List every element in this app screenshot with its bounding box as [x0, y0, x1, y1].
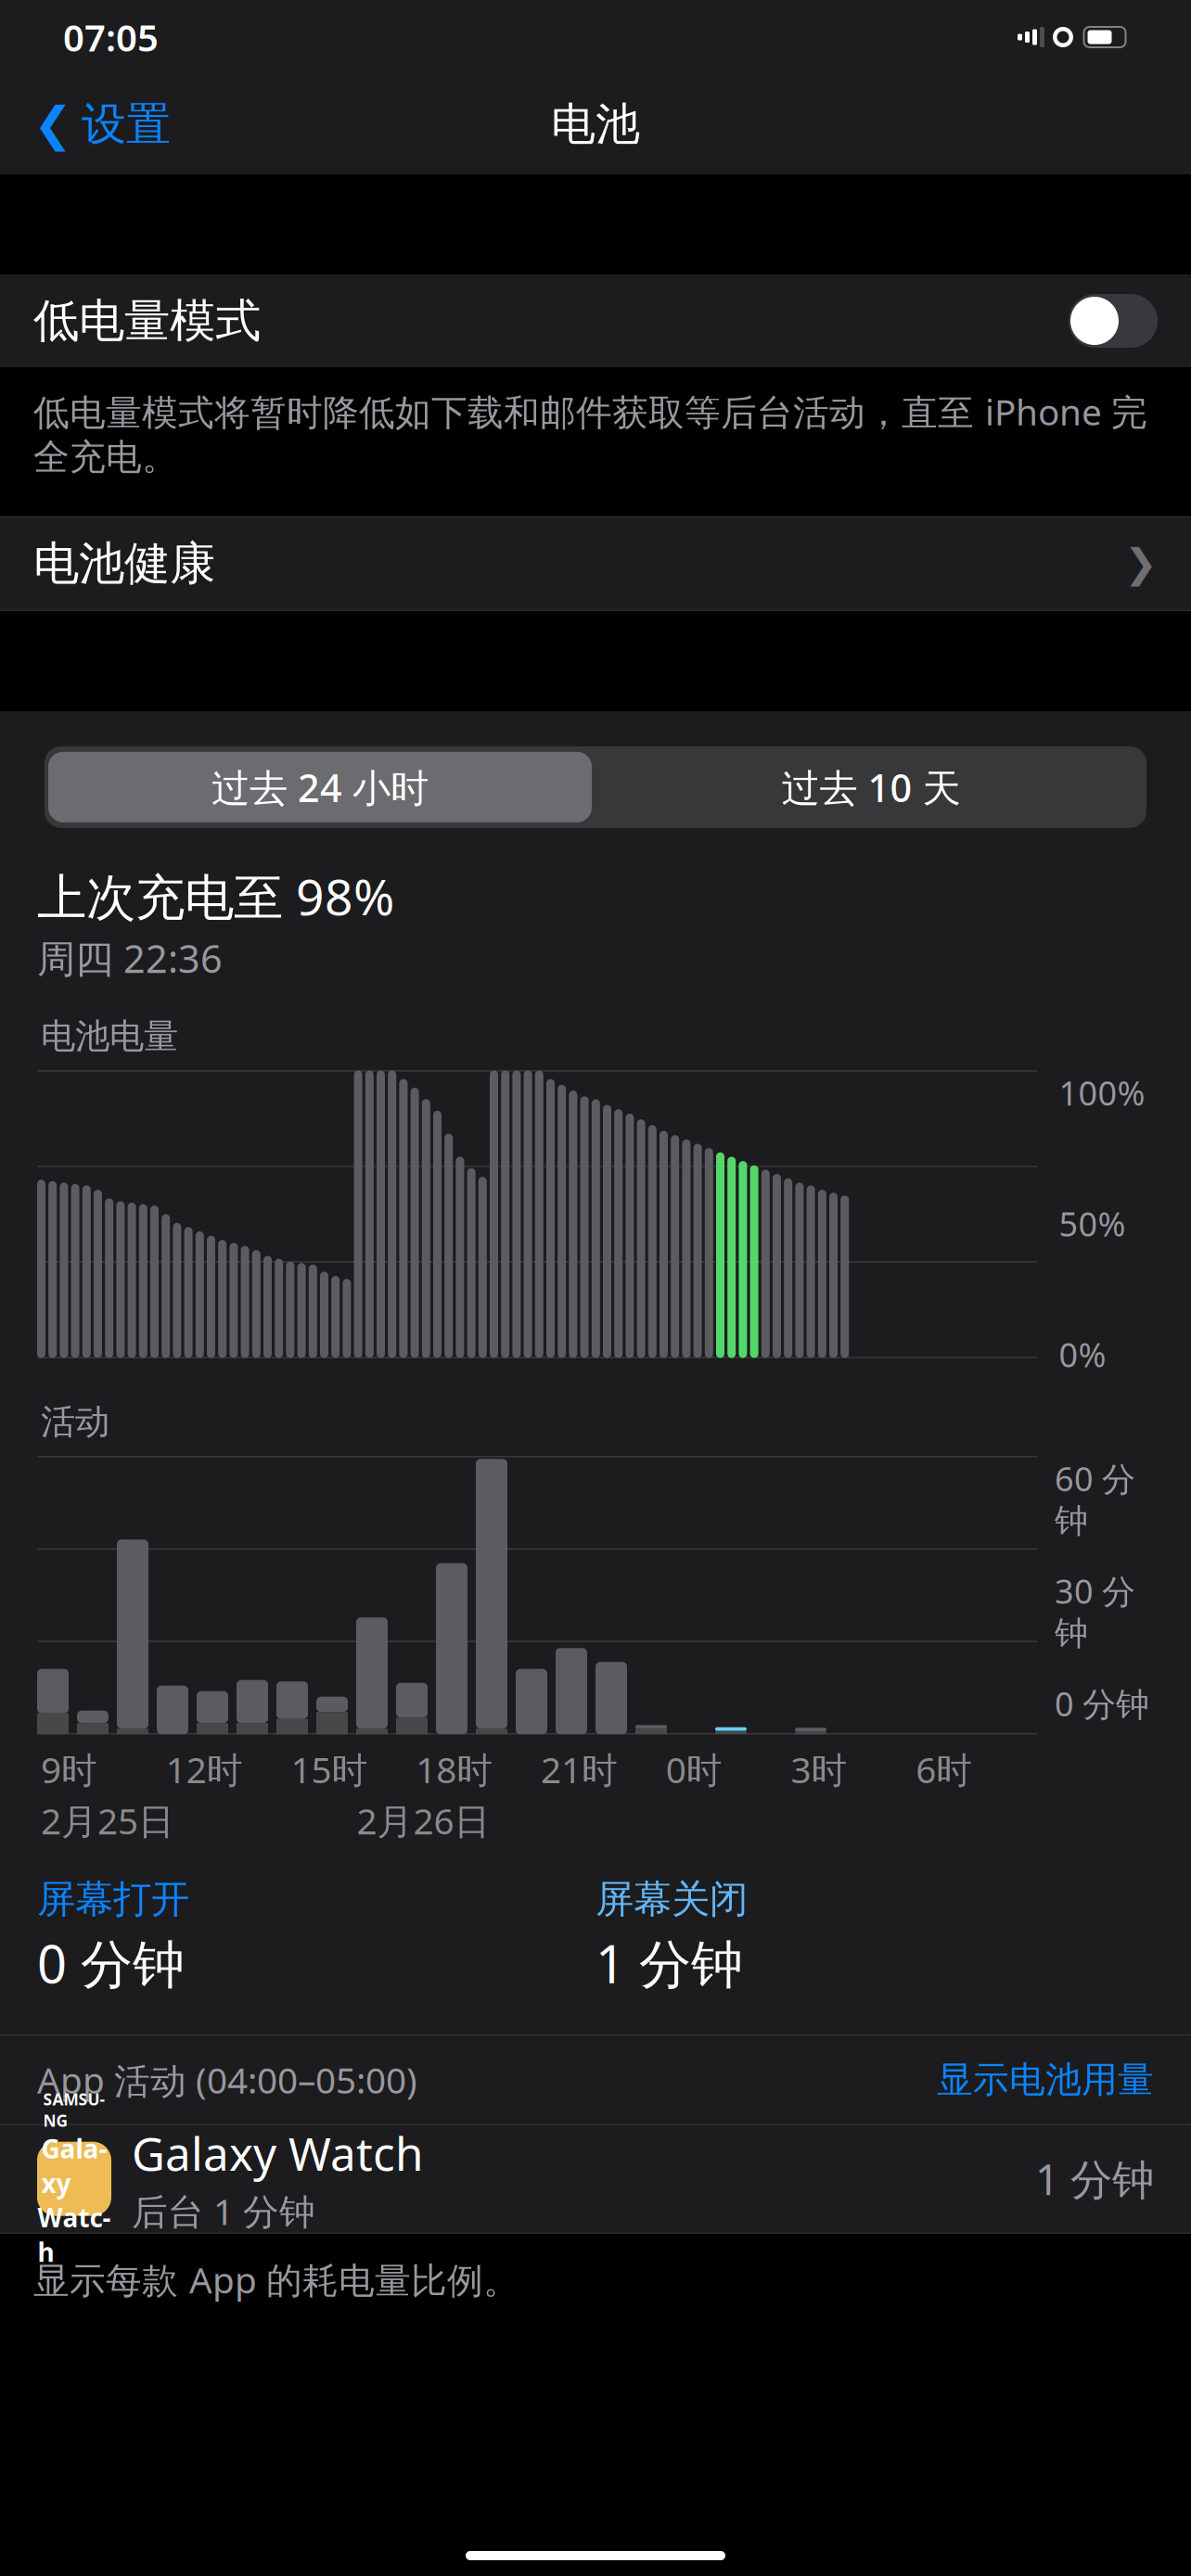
button[interactable]: 电池健康 [0, 516, 1191, 611]
staticText: 15时 [291, 1745, 368, 1793]
staticText: 后台 1 分钟 [132, 2187, 315, 2235]
staticText: 12时 [166, 1745, 243, 1793]
staticText: 07:05 [63, 12, 159, 62]
staticText: 21时 [541, 1745, 618, 1793]
staticText: 0 分钟 [1055, 1681, 1149, 1726]
staticText: 0 分钟 [37, 1928, 185, 1997]
staticText: Watch [38, 2200, 111, 2269]
button[interactable]: ❮ [0, 89, 171, 159]
staticText: 上次充电至 98% [37, 863, 394, 929]
staticText: 2月26日 [357, 1797, 490, 1844]
staticText: 过去 24 小时 [211, 762, 429, 813]
staticText: 电池健康 [33, 536, 215, 592]
staticText: 30 分钟 [1055, 1569, 1135, 1654]
button[interactable]: 过去 24 小时 [45, 748, 595, 826]
staticText: 3时 [791, 1745, 847, 1793]
staticText: 50% [1059, 1201, 1126, 1246]
staticText: ❯ [1124, 541, 1158, 586]
staticText: 2月25日 [41, 1797, 174, 1844]
staticText: 100% [1059, 1070, 1145, 1115]
button[interactable]: 屏幕打开 [37, 1876, 189, 1923]
staticText: 低电量模式 [33, 293, 261, 349]
staticText: Galaxy Watch [132, 2123, 423, 2183]
staticText: 1 分钟 [595, 1928, 743, 1997]
staticText: 屏幕打开 [37, 1876, 189, 1923]
staticText: 电池 [551, 97, 640, 152]
staticText: Galaxy [41, 2131, 107, 2200]
staticText: 9时 [41, 1745, 97, 1793]
staticText: 0时 [666, 1745, 722, 1793]
staticText: 18时 [416, 1745, 493, 1793]
button[interactable]: SAMSUNG [0, 2125, 1191, 2233]
staticText: 显示电池用量 [937, 2058, 1154, 2102]
staticText: 低电量模式将暂时降低如下载和邮件获取等后台活动，直至 iPhone 完全充电。 [33, 388, 1147, 479]
staticText: 1 分钟 [1035, 2151, 1154, 2207]
button[interactable]: 显示电池用量 [937, 2058, 1154, 2102]
staticText: 过去 10 天 [781, 762, 960, 813]
staticText: ❮ [33, 98, 72, 151]
staticText: App 活动 (04:00–05:00) [37, 2056, 417, 2104]
staticText: 60 分钟 [1055, 1456, 1135, 1541]
staticText: SAMSUNG [43, 2089, 105, 2131]
button[interactable]: 低电量模式 [0, 274, 1191, 367]
staticText: 0% [1059, 1332, 1106, 1376]
staticText: 设置 [82, 97, 171, 152]
button[interactable]: 屏幕关闭 [595, 1876, 748, 1923]
button[interactable]: 过去 10 天 [595, 748, 1146, 826]
staticText: 活动 [41, 1401, 109, 1443]
staticText: 显示每款 App 的耗电量比例。 [33, 2256, 519, 2303]
staticText: 电池电量 [41, 1015, 178, 1058]
staticText: 屏幕关闭 [595, 1876, 748, 1923]
staticText: 6时 [916, 1745, 972, 1793]
staticText: 周四 22:36 [37, 933, 223, 983]
